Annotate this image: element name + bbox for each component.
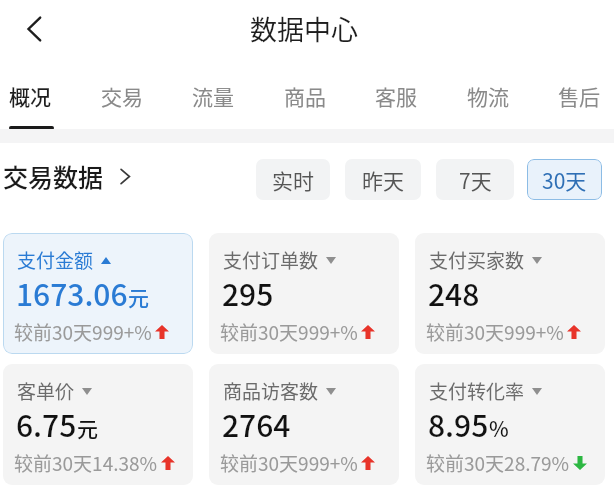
- button[interactable]: 昨天: [345, 159, 421, 200]
- staticText: 实时: [272, 165, 314, 195]
- button[interactable]: 商品访客数: [209, 364, 399, 485]
- staticText: 8.95: [428, 402, 489, 445]
- staticText: 1673.06: [16, 271, 128, 314]
- staticText: 较前30天14.38%: [14, 449, 158, 477]
- staticText: 较前30天999+%: [426, 318, 564, 346]
- staticText: 售后: [558, 81, 600, 111]
- staticText: 元: [128, 282, 149, 312]
- button[interactable]: 30天: [527, 159, 602, 200]
- staticText: 商品访客数: [223, 377, 319, 405]
- staticText: 支付转化率: [429, 377, 525, 405]
- staticText: 7天: [459, 165, 492, 195]
- staticText: 较前30天28.79%: [426, 449, 570, 477]
- staticText: 2764: [222, 402, 291, 445]
- staticText: 元: [77, 413, 98, 443]
- button[interactable]: 商品: [275, 62, 367, 130]
- staticText: 概况: [9, 81, 51, 111]
- staticText: 客单价: [17, 377, 75, 405]
- button[interactable]: 售后: [549, 62, 614, 130]
- staticText: %: [489, 413, 509, 443]
- staticText: 较前30天999+%: [220, 449, 358, 477]
- staticText: 交易: [101, 81, 143, 111]
- button[interactable]: 概况: [0, 62, 92, 130]
- button[interactable]: 实时: [256, 159, 330, 200]
- staticText: 支付金额: [17, 246, 94, 274]
- button[interactable]: 流量: [183, 62, 275, 130]
- staticText: 交易数据: [3, 158, 104, 194]
- staticText: 物流: [467, 81, 509, 111]
- staticText: 数据中心: [250, 9, 358, 48]
- button[interactable]: 支付转化率: [415, 364, 605, 485]
- staticText: 支付订单数: [223, 246, 319, 274]
- button[interactable]: 交易: [92, 62, 184, 130]
- button[interactable]: 7天: [436, 159, 514, 200]
- staticText: 248: [428, 271, 480, 314]
- staticText: 较前30天999+%: [220, 318, 358, 346]
- button[interactable]: 客单价: [3, 364, 193, 485]
- staticText: 流量: [192, 81, 234, 111]
- staticText: 6.75: [16, 402, 77, 445]
- staticText: 30天: [542, 165, 587, 195]
- button[interactable]: 支付买家数: [415, 233, 605, 354]
- button[interactable]: 支付金额: [3, 233, 193, 354]
- staticText: 客服: [375, 81, 417, 111]
- staticText: 较前30天999+%: [14, 318, 152, 346]
- staticText: 昨天: [362, 165, 404, 195]
- button[interactable]: 支付订单数: [209, 233, 399, 354]
- button[interactable]: 客服: [366, 62, 458, 130]
- button[interactable]: 交易数据: [3, 158, 134, 194]
- staticText: 支付买家数: [429, 246, 525, 274]
- staticText: 商品: [284, 81, 326, 111]
- button[interactable]: Back: [13, 7, 57, 51]
- button[interactable]: 物流: [458, 62, 550, 130]
- staticText: 295: [222, 271, 274, 314]
